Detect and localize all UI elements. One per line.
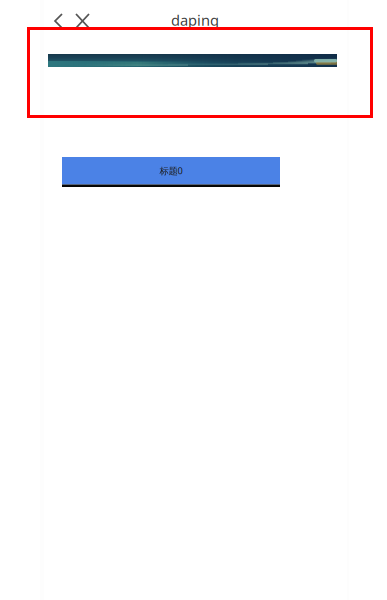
button[interactable]: Back [52, 10, 72, 30]
button[interactable]: Close [73, 10, 93, 30]
button[interactable]: 标题0 [62, 157, 280, 187]
staticText: 标题0 [159, 165, 182, 177]
staticText: daping [171, 10, 219, 30]
